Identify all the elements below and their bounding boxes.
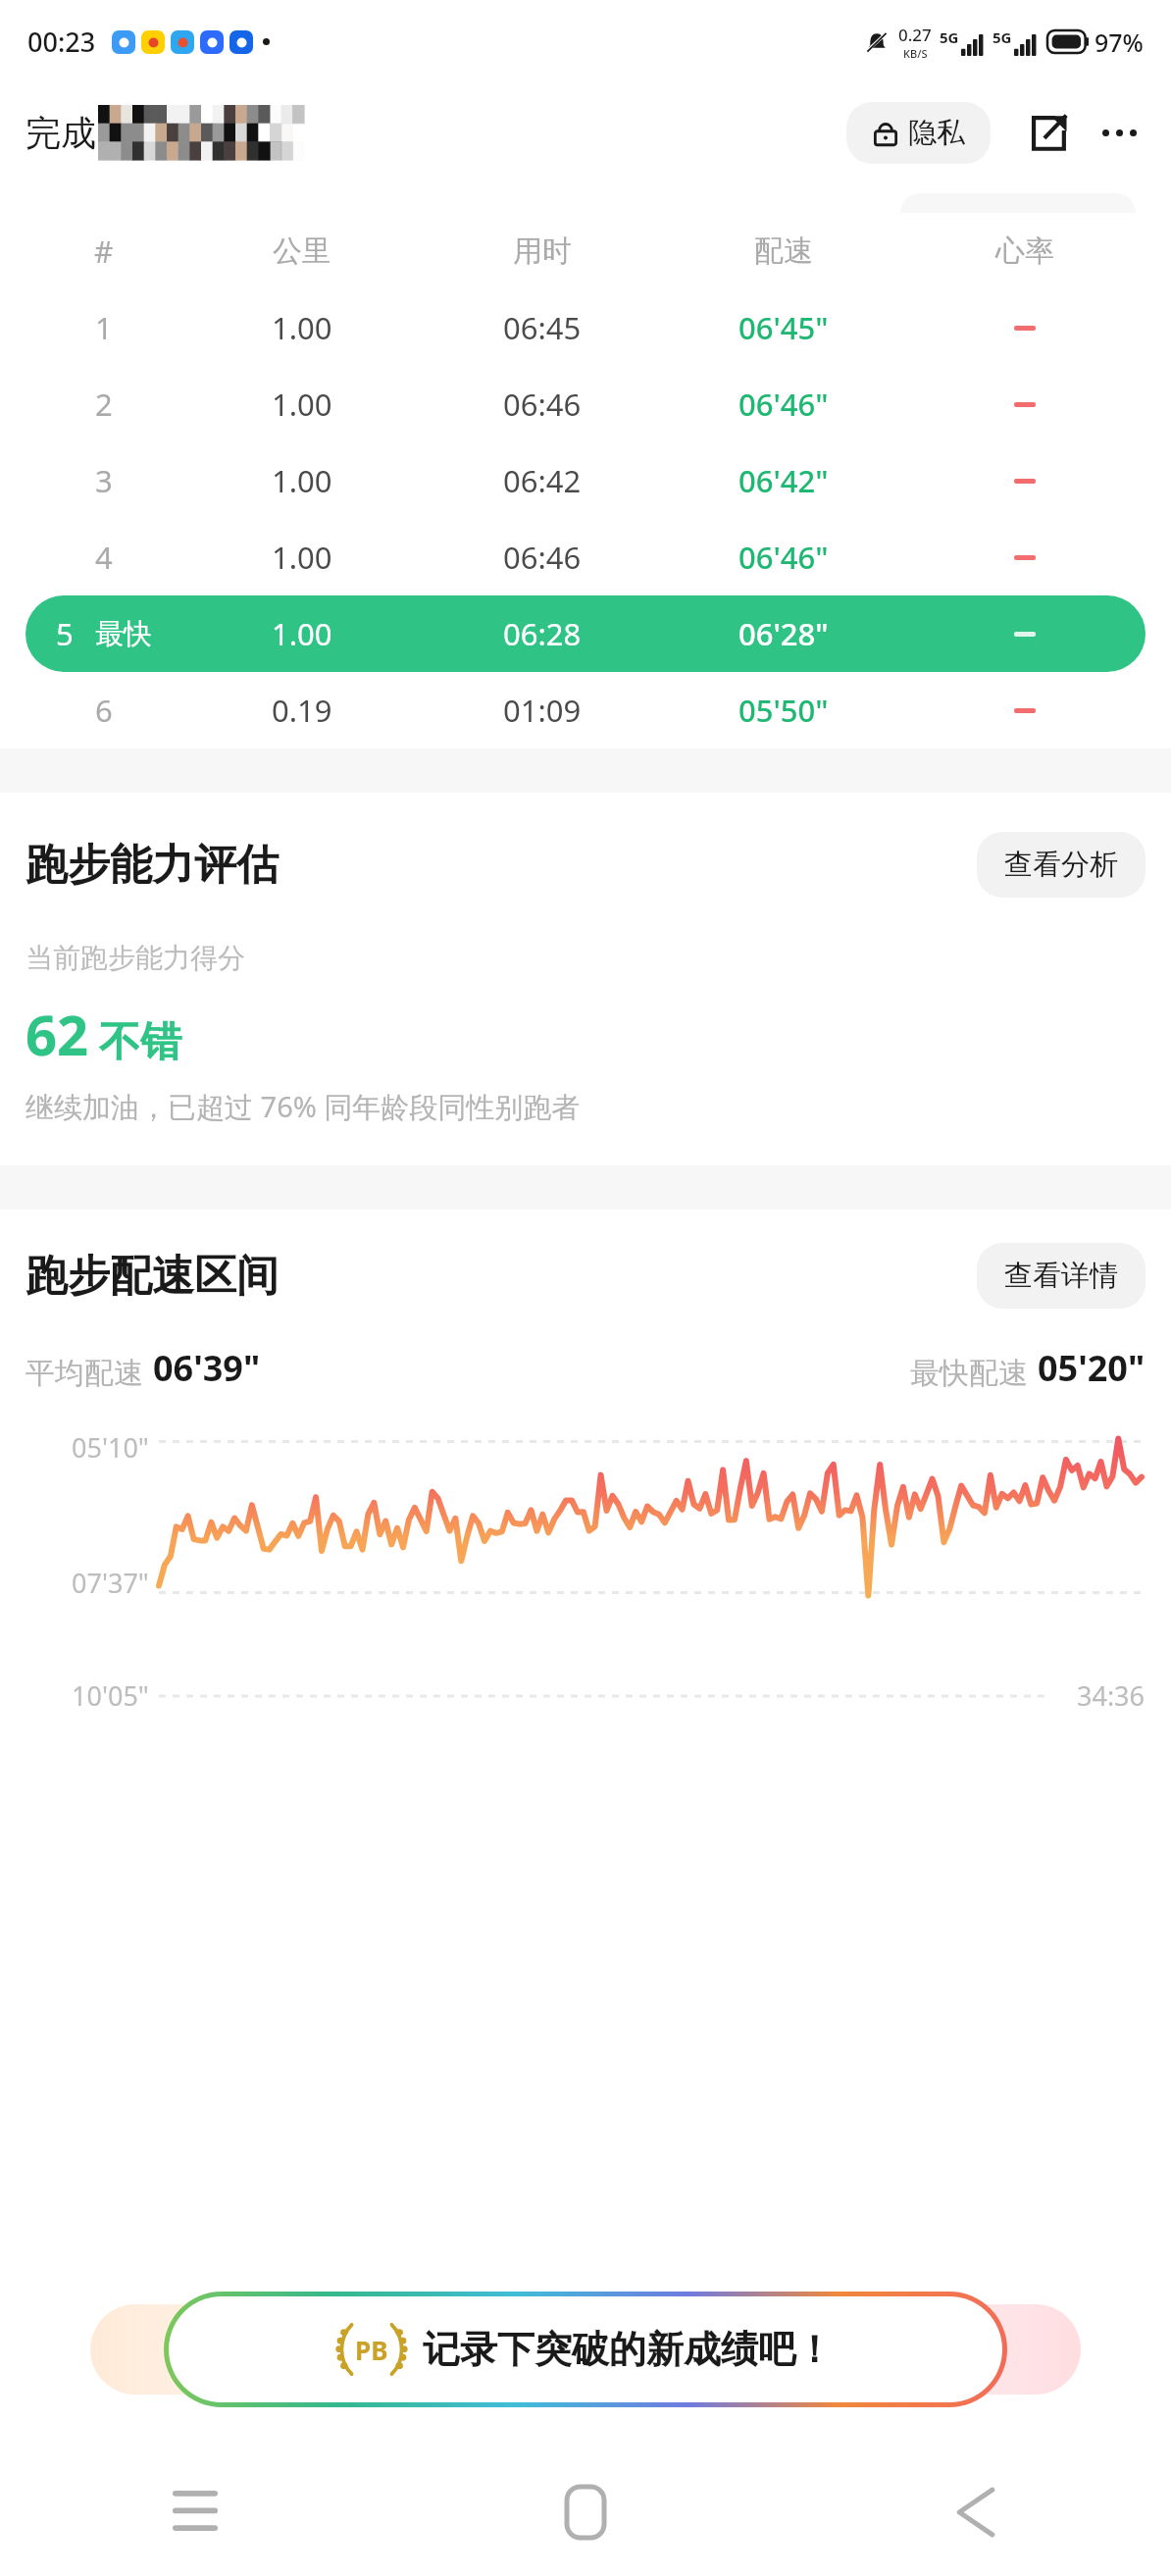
button[interactable]: 3 [25, 442, 1146, 519]
staticText: 查看分析 [1004, 847, 1118, 883]
staticText: 06'45" [738, 307, 829, 348]
staticText: 97% [1095, 26, 1144, 59]
button[interactable]: 5 [25, 595, 1146, 672]
staticText: 跑步配速区间 [25, 1250, 279, 1303]
staticText: 06'46" [738, 537, 829, 578]
staticText: 配速 [754, 232, 813, 270]
staticText: 1.00 [272, 460, 332, 501]
staticText: 06:46 [503, 537, 582, 578]
staticText: 5 [56, 613, 74, 654]
button[interactable]: 2 [25, 366, 1146, 442]
staticText: 0.19 [272, 690, 332, 731]
staticText: 06'42" [738, 460, 829, 501]
staticText: 06'28" [738, 613, 829, 654]
staticText: 1.00 [272, 613, 332, 654]
staticText: 05'20" [1038, 1344, 1146, 1392]
button[interactable]: More options [1093, 106, 1146, 159]
button[interactable]: 隐私 [846, 102, 991, 164]
staticText: 06'46" [738, 384, 829, 425]
staticText: 00:23 [27, 24, 96, 60]
staticText: 10'05" [72, 1677, 149, 1714]
button[interactable]: 6 [25, 672, 1146, 748]
staticText: 06:28 [503, 613, 582, 654]
staticText: 07'37" [72, 1565, 149, 1601]
staticText: 隐私 [908, 115, 965, 151]
button[interactable]: Recent apps [0, 2448, 390, 2576]
staticText: 最快 [95, 616, 152, 652]
staticText: KB/S [903, 46, 928, 61]
button[interactable]: 4 [25, 519, 1146, 595]
staticText: 01:09 [503, 690, 582, 731]
staticText: 平均配速 [25, 1355, 143, 1392]
staticText: 用时 [513, 232, 572, 270]
staticText: 1.00 [272, 307, 332, 348]
staticText: 0.27 [898, 24, 932, 46]
staticText: 06'39" [153, 1344, 261, 1392]
staticText: 2 [95, 384, 113, 425]
button[interactable]: 1 [25, 289, 1146, 366]
staticText: 最快配速 [910, 1355, 1028, 1392]
button[interactable]: 查看分析 [977, 832, 1146, 898]
button[interactable]: PB [169, 2296, 1002, 2402]
staticText: 06:45 [503, 307, 582, 348]
staticText: 1.00 [272, 384, 332, 425]
staticText: 1.00 [272, 537, 332, 578]
staticText: 公里 [273, 232, 331, 270]
staticText: 继续加油，已超过 76% 同年龄段同性别跑者 [25, 1087, 581, 1126]
staticText: 05'10" [72, 1429, 149, 1466]
staticText: 06:42 [503, 460, 582, 501]
staticText: 5G [993, 27, 1012, 47]
staticText: 4 [95, 537, 113, 578]
staticText: 查看详情 [1004, 1258, 1118, 1294]
button[interactable]: Home [390, 2448, 781, 2576]
staticText: 心率 [995, 232, 1054, 270]
staticText: 62 [25, 997, 89, 1071]
staticText: 06:46 [503, 384, 582, 425]
button[interactable]: Back [781, 2448, 1171, 2576]
staticText: 34:36 [1077, 1677, 1146, 1714]
staticText: # [94, 232, 114, 272]
staticText: 3 [95, 460, 113, 501]
staticText: 跑步能力评估 [25, 839, 279, 892]
staticText: 记录下突破的新成绩吧！ [423, 2326, 833, 2373]
staticText: 不错 [99, 1016, 181, 1068]
staticText: 5G [940, 27, 959, 47]
staticText: 05'50" [738, 690, 829, 731]
staticText: PB [355, 2333, 388, 2367]
button[interactable]: Share [1022, 106, 1075, 159]
staticText: 当前跑步能力得分 [25, 941, 245, 975]
staticText: 6 [95, 690, 113, 731]
staticText: 1 [95, 307, 113, 348]
button[interactable]: 查看详情 [977, 1243, 1146, 1309]
staticText: 完成 [25, 111, 96, 155]
